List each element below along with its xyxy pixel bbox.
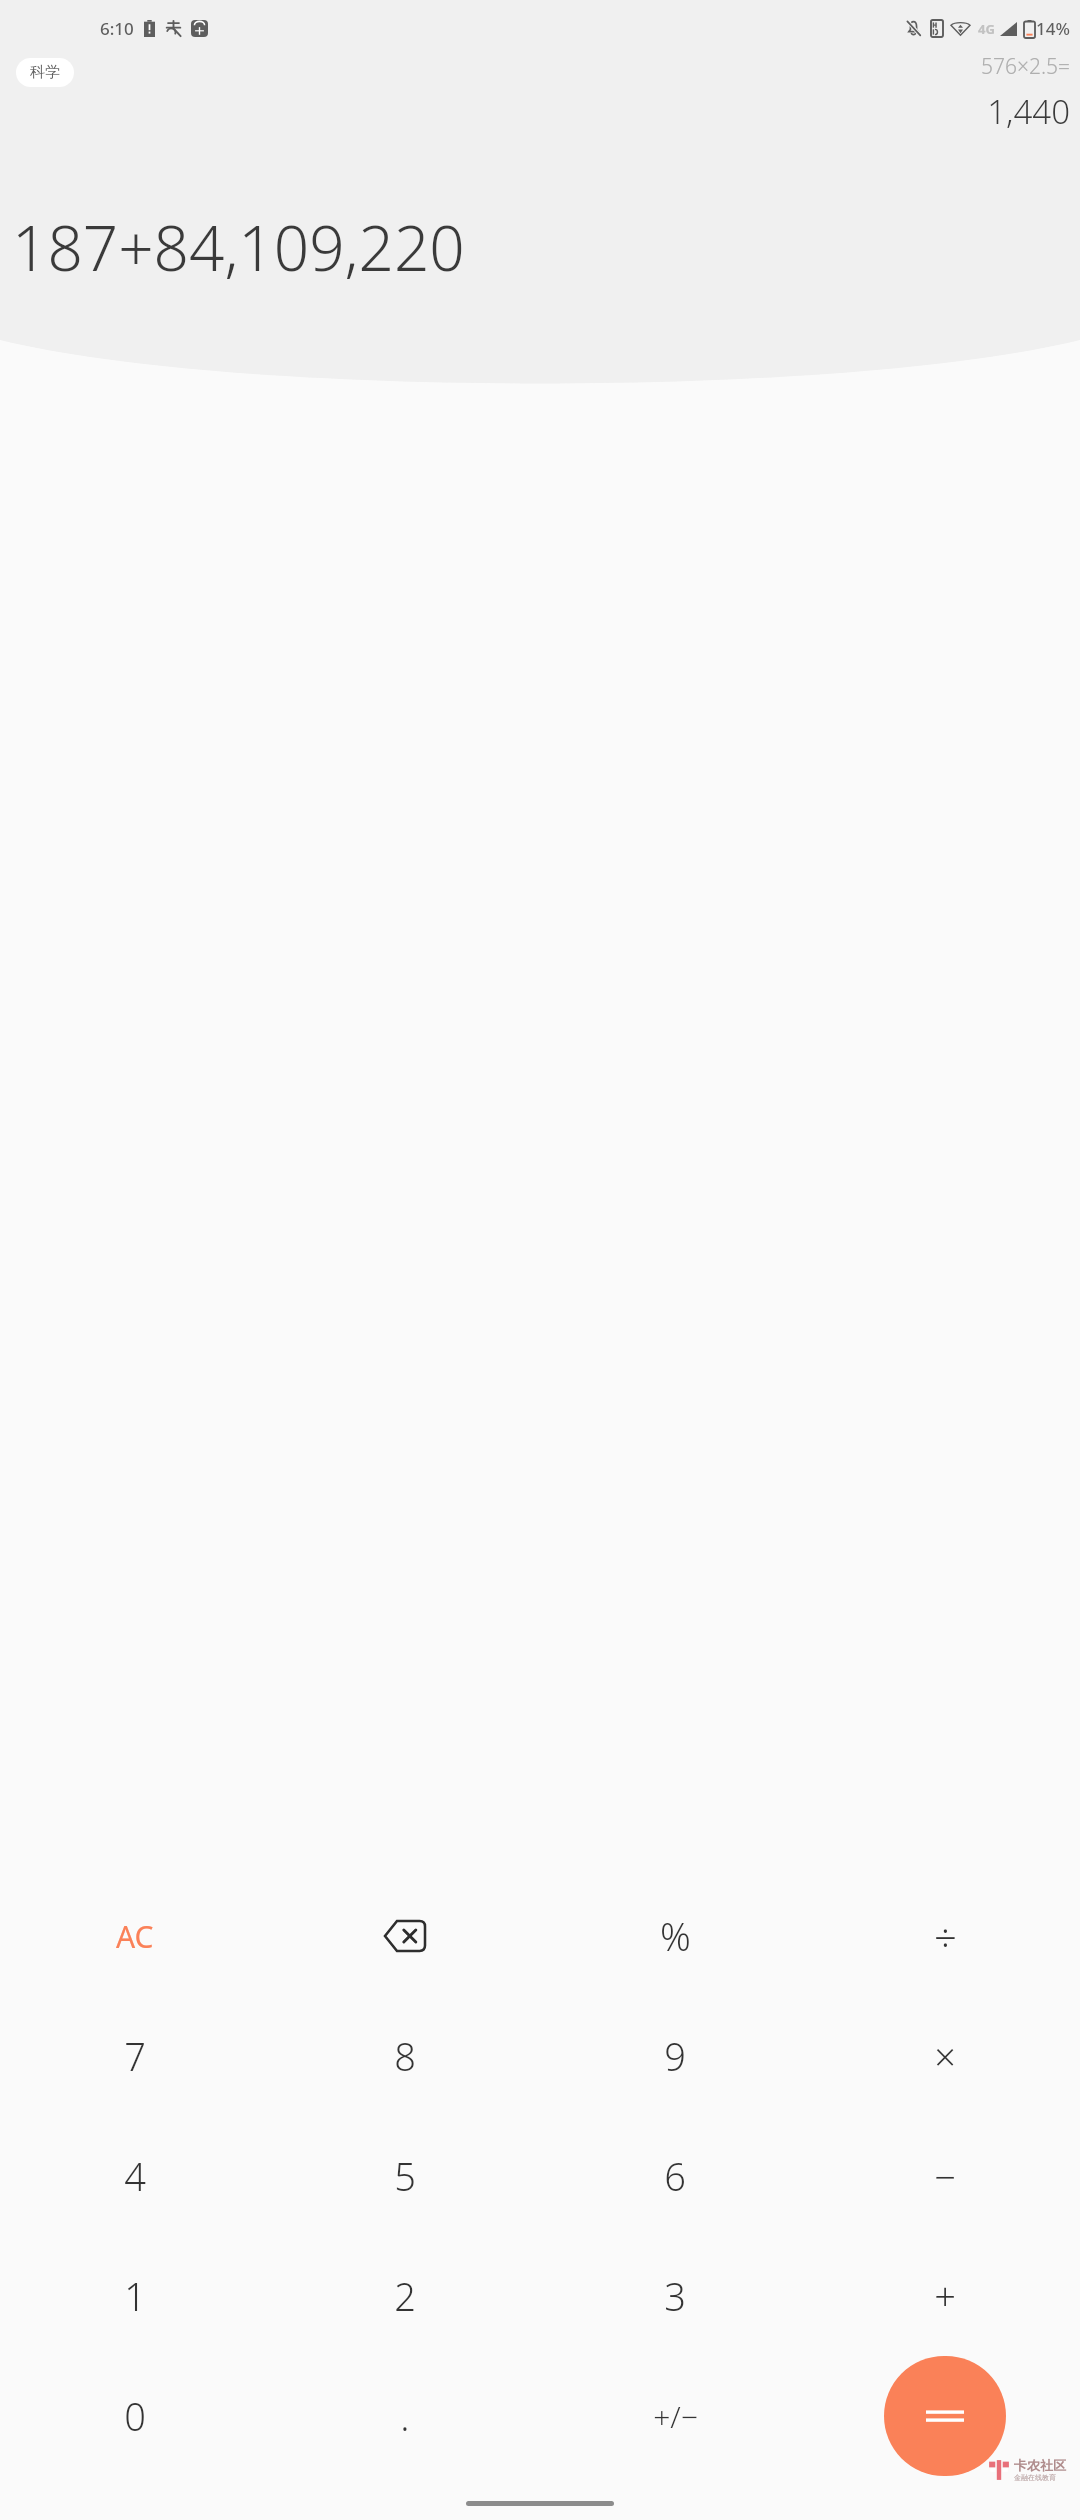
staticText: 金融在线教育 [1014,2473,1056,2482]
staticText: 576×2.5= [980,52,1070,81]
staticText: 8 [394,2030,416,2082]
staticText: 2 [394,2270,416,2322]
staticText: ÷ [934,1909,957,1963]
staticText: 14% [1036,17,1070,40]
staticText: 0 [124,2390,146,2442]
staticText: +/− [653,2396,698,2437]
button[interactable]: 科学 [16,58,74,87]
button[interactable]: 4 [81,2122,189,2230]
staticText: 187+84,109,220 [12,205,465,289]
button[interactable]: − [891,2122,999,2230]
staticText: 6 [664,2150,686,2202]
button[interactable]: 6 [621,2122,729,2230]
staticText: AC [116,1916,154,1957]
button[interactable]: AC [81,1882,189,1990]
button[interactable]: . [351,2362,459,2470]
button[interactable]: × [891,2002,999,2110]
button[interactable]: 5 [351,2122,459,2230]
staticText: 5 [394,2150,416,2202]
staticText: 1,440 [987,89,1070,134]
button[interactable]: Equals [884,2356,1006,2476]
staticText: 4 [124,2150,146,2202]
button[interactable]: 7 [81,2002,189,2110]
button[interactable]: ÷ [891,1882,999,1990]
button[interactable]: Backspace [351,1882,459,1990]
button[interactable]: 2 [351,2242,459,2350]
staticText: × [934,2030,956,2082]
staticText: 6:10 [100,17,134,40]
staticText: % [660,1910,691,1962]
staticText: 3 [664,2270,686,2322]
button[interactable]: 1 [81,2242,189,2350]
button[interactable]: 3 [621,2242,729,2350]
button[interactable]: + [891,2242,999,2350]
staticText: 卡农社区 [1014,2457,1066,2473]
staticText: . [400,2390,410,2442]
staticText: 4G [978,20,995,38]
button[interactable]: 0 [81,2362,189,2470]
staticText: 科学 [30,63,60,82]
staticText: − [934,2150,956,2202]
button[interactable]: % [621,1882,729,1990]
button[interactable]: 9 [621,2002,729,2110]
staticText: 1 [124,2270,146,2322]
button[interactable]: 8 [351,2002,459,2110]
staticText: + [934,2270,956,2322]
button[interactable]: +/− [621,2362,729,2470]
staticText: 7 [124,2030,146,2082]
staticText: 9 [664,2030,686,2082]
